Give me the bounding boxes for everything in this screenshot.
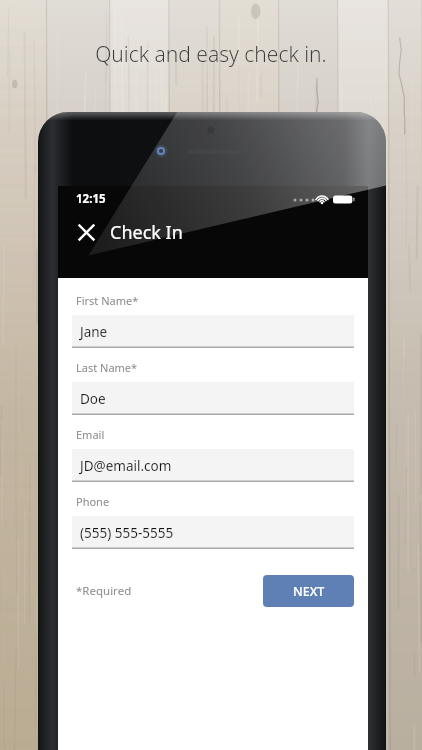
- staticText: Doe: [80, 390, 106, 408]
- staticText: First Name*: [76, 293, 139, 308]
- staticText: Check In: [110, 220, 183, 245]
- staticText: JD@email.com: [80, 457, 172, 475]
- button[interactable]: JD@email.com: [72, 449, 354, 482]
- button[interactable]: Doe: [72, 382, 354, 415]
- staticText: Phone: [76, 494, 110, 509]
- staticText: *Required: [76, 583, 132, 599]
- staticText: Email: [76, 427, 105, 442]
- staticText: NEXT: [293, 583, 325, 600]
- staticText: 12:15: [76, 191, 106, 207]
- staticText: Jane: [80, 323, 108, 341]
- button[interactable]: NEXT: [263, 575, 354, 607]
- staticText: (555) 555-5555: [80, 524, 174, 542]
- button[interactable]: Close: [66, 212, 106, 252]
- staticText: Quick and easy check in.: [95, 40, 327, 69]
- button[interactable]: (555) 555-5555: [72, 516, 354, 549]
- button[interactable]: Jane: [72, 315, 354, 348]
- staticText: Last Name*: [76, 360, 138, 375]
